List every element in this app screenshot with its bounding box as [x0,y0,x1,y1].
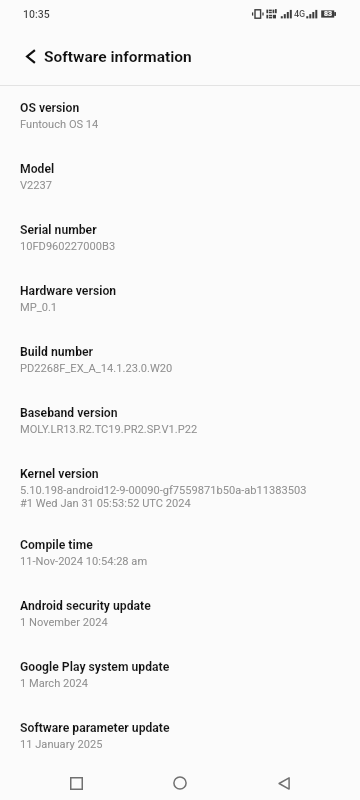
button[interactable]: OS version [0,85,360,162]
staticText: PD2268F_EX_A_14.1.23.0.W20 [20,362,173,375]
staticText: Build number [20,345,94,359]
staticText: Software information [44,48,192,66]
staticText: Kernel version [20,467,99,481]
staticText: 10FD960227000B3 [20,240,116,253]
button[interactable]: Back [14,39,48,73]
staticText: 10:35 [23,8,50,20]
staticText: 11-Nov-2024 10:54:28 am [20,555,148,568]
staticText: 1 November 2024 [20,616,108,629]
button[interactable]: Software parameter update [0,721,360,782]
staticText: Baseband version [20,406,118,420]
staticText: Compile time [20,538,93,552]
staticText: Hardware version [20,284,117,298]
staticText: MP_0.1 [20,301,58,314]
button[interactable]: Build number [0,345,360,406]
staticText: Google Play system update [20,660,170,674]
staticText: 83 [324,10,333,18]
button[interactable]: Baseband version [0,406,360,467]
staticText: Software parameter update [20,721,170,735]
button[interactable]: Recent apps [52,766,100,800]
staticText: 4G [294,9,306,20]
button[interactable]: Google Play system update [0,660,360,721]
button[interactable]: Model [0,162,360,223]
button[interactable]: Compile time [0,538,360,599]
button[interactable]: Back [260,766,308,800]
staticText: V2237 [20,179,53,192]
staticText: 11 January 2025 [20,738,103,751]
button[interactable]: Android security update [0,599,360,660]
button[interactable]: Home [156,766,204,800]
button[interactable]: Serial number [0,223,360,284]
staticText: OS version [20,101,80,115]
staticText: 1 March 2024 [20,677,88,690]
button[interactable]: Hardware version [0,284,360,345]
staticText: Serial number [20,223,97,237]
staticText: Funtouch OS 14 [20,118,99,131]
button[interactable]: Kernel version [0,467,360,538]
staticText: Android security update [20,599,151,613]
staticText: MOLY.LR13.R2.TC19.PR2.SP.V1.P22 [20,423,198,436]
staticText: 5.10.198-android12-9-00090-gf7559871b50a… [20,484,307,510]
staticText: Model [20,162,55,176]
